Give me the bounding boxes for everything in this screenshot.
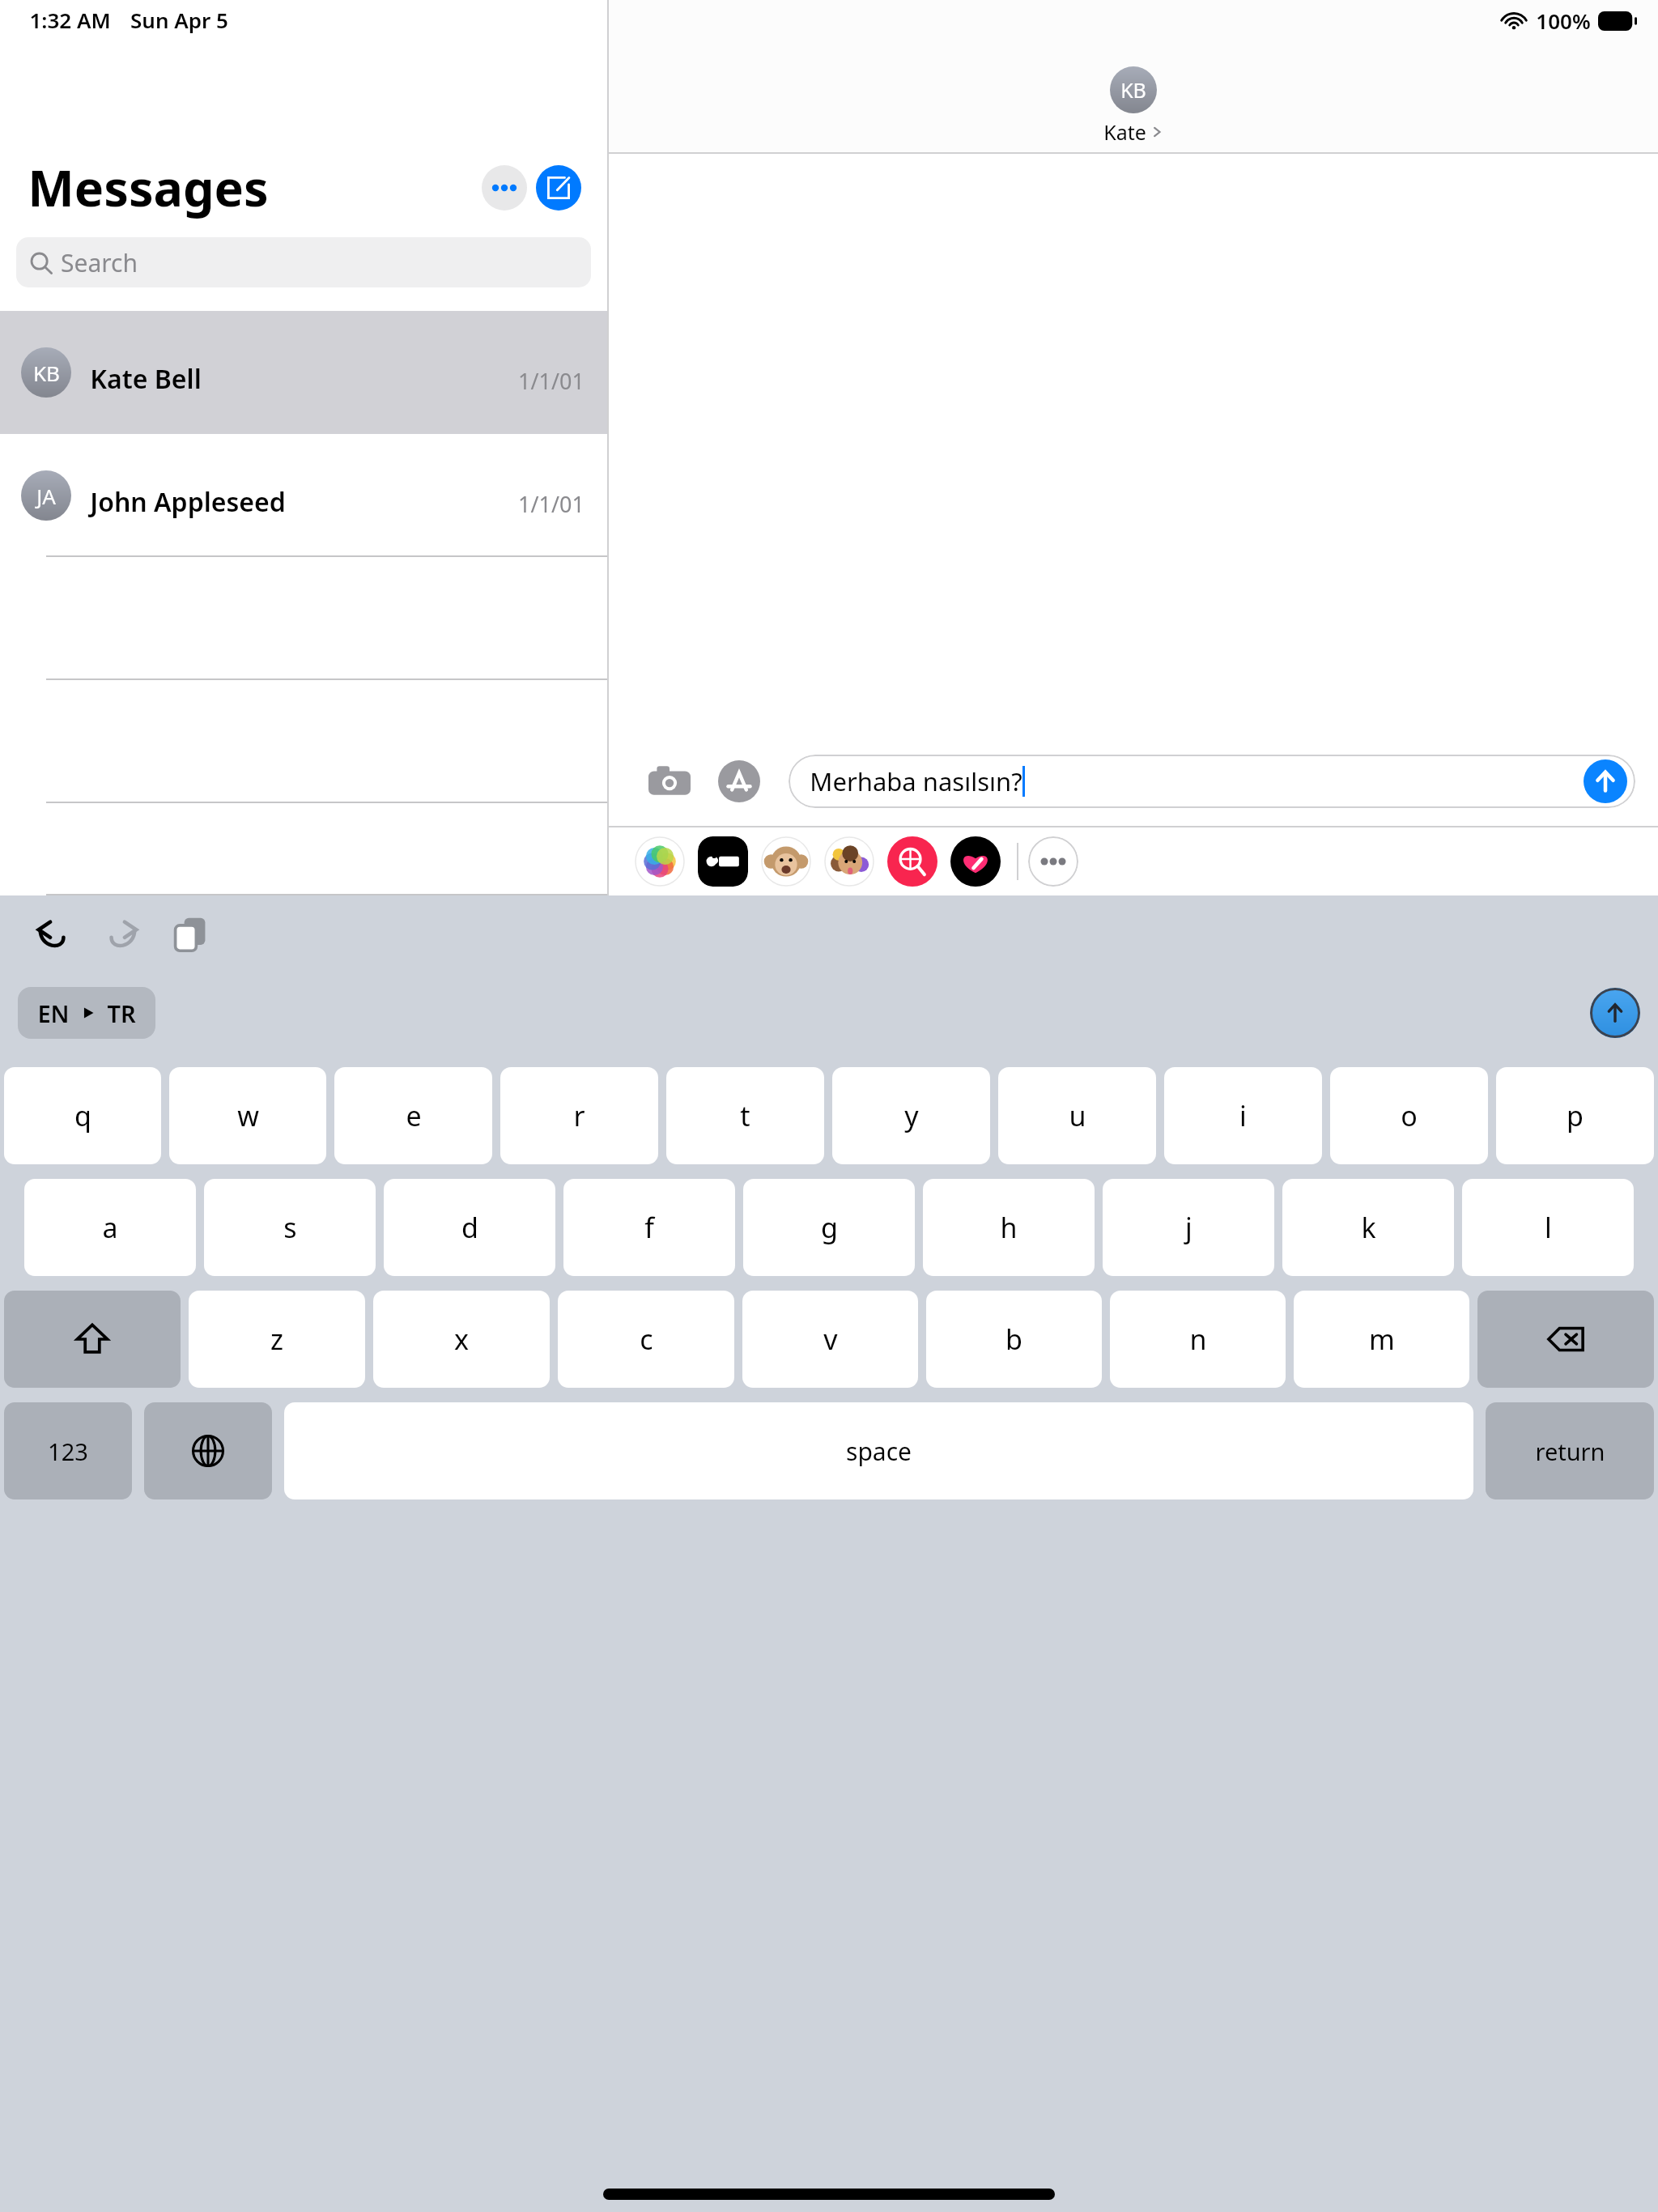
staticText: 100% (1536, 6, 1591, 35)
staticText: x (454, 1321, 469, 1358)
staticText: i (1239, 1097, 1247, 1134)
button[interactable]: z (189, 1291, 365, 1388)
button[interactable]: More apps (1028, 836, 1078, 887)
button[interactable]: a (24, 1179, 196, 1276)
button[interactable]: h (923, 1179, 1095, 1276)
staticText: Search (61, 246, 138, 279)
staticText: 123 (48, 1436, 88, 1467)
button[interactable]: k (1282, 1179, 1454, 1276)
button[interactable]: Merhaba nasılsın? (789, 755, 1635, 808)
staticText: l (1545, 1209, 1552, 1246)
button[interactable]: s (204, 1179, 376, 1276)
staticText: o (1401, 1097, 1418, 1134)
button[interactable]: n (1110, 1291, 1286, 1388)
staticText: a (102, 1209, 118, 1246)
staticText: 1/1/01 (518, 366, 585, 396)
button[interactable]: x (373, 1291, 550, 1388)
button[interactable]: b (926, 1291, 1102, 1388)
staticText: n (1189, 1321, 1207, 1358)
staticText: r (573, 1097, 585, 1134)
button[interactable]: f (563, 1179, 735, 1276)
staticText: Kate Bell (90, 361, 202, 397)
button[interactable]: Send (1584, 759, 1627, 803)
staticText: 1/1/01 (518, 489, 585, 519)
staticText: Sun Apr 5 (130, 6, 228, 34)
button[interactable]: Redo (97, 909, 147, 959)
staticText: JA (36, 482, 56, 510)
staticText: KB (1120, 76, 1146, 104)
staticText: John Appleseed (90, 484, 286, 520)
button[interactable]: KB (1103, 66, 1163, 146)
button[interactable]: j (1103, 1179, 1274, 1276)
button[interactable]: i (1164, 1067, 1322, 1164)
staticText: Messages (28, 154, 269, 221)
button[interactable]: t (666, 1067, 824, 1164)
staticText: b (1005, 1321, 1022, 1358)
staticText: space (846, 1435, 912, 1468)
staticText: y (904, 1097, 919, 1134)
staticText: w (237, 1097, 259, 1134)
button[interactable]: Return (1486, 1402, 1654, 1499)
button[interactable]: e (334, 1067, 492, 1164)
staticText: c (640, 1321, 653, 1358)
button[interactable]: u (998, 1067, 1156, 1164)
button[interactable]: iMessage app (698, 836, 748, 887)
button[interactable]: JA (0, 434, 607, 557)
button[interactable]: App Store (716, 758, 763, 805)
staticText: g (821, 1209, 838, 1246)
button[interactable]: Paste (165, 909, 215, 959)
button[interactable]: l (1462, 1179, 1634, 1276)
staticText: k (1361, 1209, 1376, 1246)
button[interactable]: iMessage app (824, 836, 874, 887)
staticText: j (1185, 1209, 1192, 1246)
staticText: m (1369, 1321, 1395, 1358)
button[interactable]: iMessage app (761, 836, 811, 887)
button[interactable]: Camera (646, 758, 693, 805)
button[interactable]: d (384, 1179, 555, 1276)
button[interactable]: Search (16, 237, 591, 287)
staticText: u (1069, 1097, 1086, 1134)
button[interactable]: iMessage app (635, 836, 685, 887)
button[interactable]: space (284, 1402, 1473, 1499)
button[interactable]: KB (0, 311, 607, 434)
staticText: q (74, 1097, 91, 1134)
button[interactable]: q (4, 1067, 161, 1164)
button[interactable]: Undo (28, 909, 78, 959)
button[interactable]: Numbers (4, 1402, 132, 1499)
button[interactable]: EN (18, 987, 155, 1039)
button[interactable]: Compose new message (536, 165, 581, 211)
button[interactable]: o (1330, 1067, 1488, 1164)
button[interactable]: Backspace (1477, 1291, 1654, 1388)
button[interactable]: m (1294, 1291, 1469, 1388)
button[interactable]: p (1496, 1067, 1654, 1164)
button[interactable]: iMessage app (950, 836, 1001, 887)
staticText: KB (33, 359, 60, 387)
staticText: TR (107, 998, 136, 1029)
staticText: v (823, 1321, 838, 1358)
staticText: return (1535, 1436, 1605, 1467)
staticText: e (406, 1097, 422, 1134)
staticText: f (644, 1209, 654, 1246)
button[interactable]: c (558, 1291, 734, 1388)
button[interactable]: r (500, 1067, 658, 1164)
button[interactable]: g (743, 1179, 915, 1276)
staticText: 1:32 AM (29, 6, 111, 34)
staticText: d (461, 1209, 478, 1246)
button[interactable]: v (742, 1291, 918, 1388)
button[interactable]: y (832, 1067, 990, 1164)
staticText: EN (37, 998, 70, 1029)
staticText: h (1000, 1209, 1018, 1246)
staticText: Merhaba nasılsın? (810, 764, 1022, 798)
staticText: z (270, 1321, 283, 1358)
staticText: Kate (1103, 118, 1146, 146)
button[interactable]: Shift (4, 1291, 181, 1388)
staticText: s (283, 1209, 297, 1246)
staticText: t (740, 1097, 750, 1134)
button[interactable]: w (169, 1067, 326, 1164)
staticText: p (1567, 1097, 1584, 1134)
button[interactable]: Switch keyboard (144, 1402, 272, 1499)
button[interactable]: iMessage app (887, 836, 937, 887)
button[interactable]: Translate and send (1590, 988, 1640, 1038)
button[interactable]: More options (482, 165, 527, 211)
